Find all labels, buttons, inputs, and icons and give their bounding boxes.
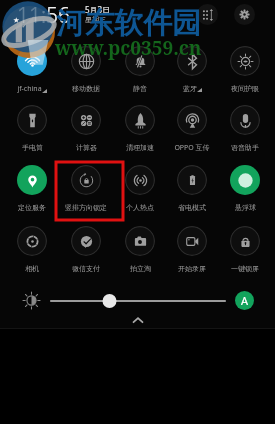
button[interactable]: 计算器 bbox=[71, 105, 101, 152]
staticText: 一键锁屏 bbox=[231, 264, 259, 273]
staticText: 定位服务 bbox=[18, 203, 46, 212]
button[interactable]: Auto brightness bbox=[235, 291, 254, 310]
staticText: 河东软件园 bbox=[56, 5, 201, 42]
staticText: 夜间护眼 bbox=[231, 84, 259, 93]
staticText: 相机 bbox=[25, 264, 39, 273]
button[interactable]: Settings bbox=[234, 4, 255, 25]
button[interactable]: OPPO 互传 bbox=[174, 105, 210, 153]
staticText: 手电筒 bbox=[22, 143, 43, 152]
staticText: 个人热点 bbox=[126, 203, 154, 212]
button[interactable]: 微信支付 bbox=[71, 226, 101, 273]
staticText: 11:56 bbox=[17, 1, 71, 29]
button[interactable]: 手电筒 bbox=[17, 105, 47, 152]
staticText: 蓝牙 bbox=[183, 84, 197, 93]
button[interactable]: 开始录屏 bbox=[177, 226, 207, 273]
button[interactable]: 相机 bbox=[17, 226, 47, 273]
button[interactable]: 移动数据 bbox=[71, 46, 101, 93]
button[interactable]: Expand bbox=[130, 315, 146, 325]
button[interactable]: 个人热点 bbox=[125, 165, 155, 212]
staticText: 开始录屏 bbox=[178, 264, 206, 273]
button[interactable]: 清理加速 bbox=[125, 105, 155, 152]
staticText: 清理加速 bbox=[126, 143, 154, 152]
staticText: www.pc0359.cn bbox=[55, 35, 202, 61]
staticText: 5月3日 bbox=[85, 4, 111, 15]
button[interactable]: Edit tiles bbox=[197, 4, 218, 25]
staticText: 星期三 bbox=[85, 15, 106, 24]
staticText: 计算器 bbox=[76, 143, 97, 152]
button[interactable]: 竖排方向锁定 bbox=[65, 165, 107, 212]
button[interactable]: 静音 bbox=[125, 46, 155, 93]
staticText: 静音 bbox=[133, 84, 147, 93]
staticText: OPPO 互传 bbox=[174, 143, 210, 153]
button[interactable]: 夜间护眼 bbox=[230, 46, 260, 93]
staticText: A bbox=[241, 293, 249, 308]
staticText: 语音助手 bbox=[231, 143, 259, 152]
staticText: 拍立淘 bbox=[130, 264, 151, 273]
button[interactable]: jf-china bbox=[17, 46, 47, 94]
button[interactable]: 蓝牙 bbox=[177, 46, 207, 93]
button[interactable]: 语音助手 bbox=[230, 105, 260, 152]
staticText: 11:56 bbox=[17, 1, 71, 30]
button[interactable]: 一键锁屏 bbox=[230, 226, 260, 273]
button[interactable]: 定位服务 bbox=[17, 165, 47, 212]
button[interactable]: 省电模式 bbox=[177, 165, 207, 212]
button[interactable]: 拍立淘 bbox=[125, 226, 155, 273]
staticText: 悬浮球 bbox=[235, 203, 256, 212]
staticText: 竖排方向锁定 bbox=[65, 203, 107, 212]
staticText: 微信支付 bbox=[72, 264, 100, 273]
staticText: 移动数据 bbox=[72, 84, 100, 93]
button[interactable]: 悬浮球 bbox=[230, 165, 260, 212]
staticText: 省电模式 bbox=[178, 203, 206, 212]
staticText: jf-china bbox=[17, 84, 42, 94]
